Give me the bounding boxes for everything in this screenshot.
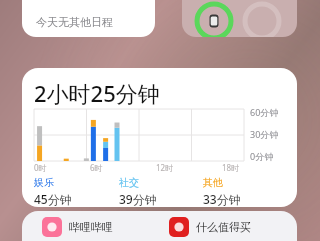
staticText: 6时	[90, 162, 103, 173]
button[interactable]: 哔哩哔哩	[42, 217, 169, 237]
staticText: 其他	[203, 176, 223, 189]
staticText: 今天无其他日程	[36, 15, 113, 29]
staticText: 2小时25分钟	[34, 78, 160, 108]
staticText: 哔哩哔哩	[69, 220, 113, 234]
staticText: 45分钟	[34, 191, 72, 207]
staticText: 60分钟	[250, 106, 279, 118]
button[interactable]: Watch activity widget	[182, 0, 297, 37]
button[interactable]: 今天无其他日程	[22, 0, 155, 37]
button[interactable]: 2小时25分钟	[22, 68, 297, 207]
staticText: 39分钟	[119, 191, 157, 207]
staticText: 0分钟	[250, 150, 274, 162]
staticText: 30分钟	[250, 128, 279, 140]
staticText: 什么值得买	[196, 220, 251, 234]
button[interactable]: 其他	[203, 176, 287, 207]
button[interactable]: 社交	[119, 176, 203, 207]
staticText: 12时	[156, 162, 174, 173]
button[interactable]: 娱乐	[34, 176, 119, 207]
staticText: 社交	[119, 176, 139, 189]
staticText: 18时	[222, 162, 240, 173]
staticText: 0时	[34, 162, 47, 173]
button[interactable]: 什么值得买	[169, 217, 297, 237]
staticText: 33分钟	[203, 191, 241, 207]
staticText: 娱乐	[34, 176, 54, 189]
